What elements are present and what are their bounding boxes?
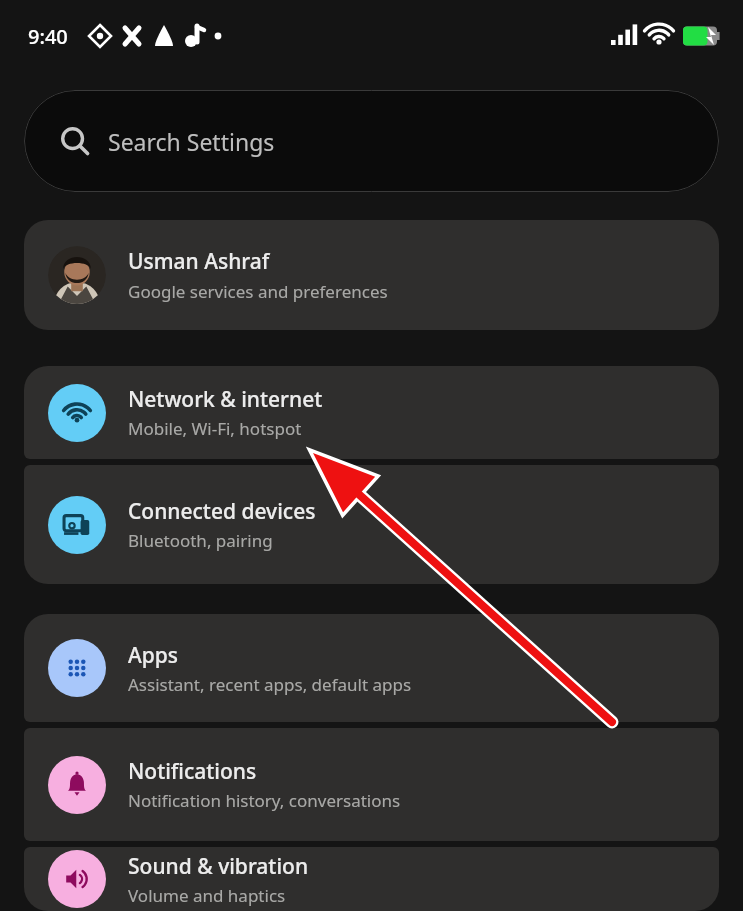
staticText: Bluetooth, pairing [128,529,273,552]
staticText: Assistant, recent apps, default apps [128,673,412,696]
staticText: Google services and preferences [128,280,388,303]
staticText: Network & internet [128,385,323,414]
staticText: Notifications [128,757,257,786]
staticText: Sound & vibration [128,852,309,881]
staticText: Mobile, Wi-Fi, hotspot [128,417,302,440]
button[interactable]: Network & internet [24,366,719,459]
staticText: Usman Ashraf [128,247,270,276]
button[interactable]: Apps [24,614,719,722]
staticText: Notification history, conversations [128,789,401,812]
staticText: 9:40 [28,23,68,50]
staticText: Search Settings [108,126,275,157]
button[interactable]: Sound & vibration [24,847,719,911]
staticText: Volume and haptics [128,884,286,907]
button[interactable]: Search Settings [24,90,719,192]
button[interactable]: Usman Ashraf [24,220,719,330]
staticText: Apps [128,641,179,670]
button[interactable]: Notifications [24,728,719,841]
button[interactable]: Connected devices [24,465,719,584]
staticText: Connected devices [128,497,316,526]
